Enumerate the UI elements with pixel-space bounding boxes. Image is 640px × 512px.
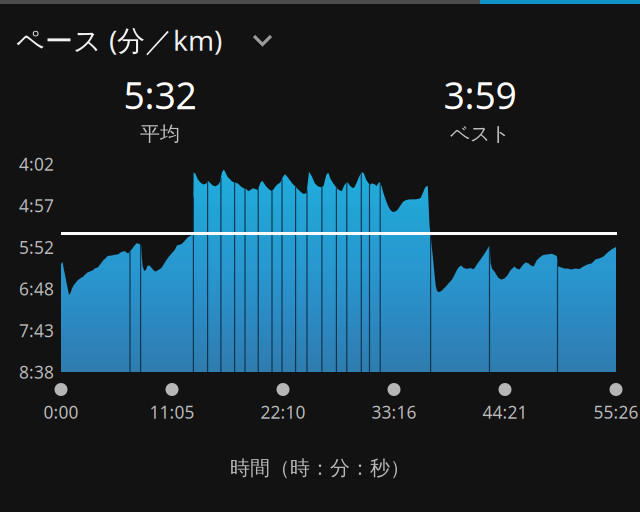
staticText: 4:02	[19, 152, 54, 175]
staticText: 平均	[140, 122, 180, 146]
staticText: 33:16	[371, 400, 416, 423]
staticText: ベスト	[450, 122, 510, 146]
staticText: 55:26	[593, 400, 638, 423]
button[interactable]: ペース (分／km)	[0, 20, 640, 60]
staticText: 5:52	[19, 236, 54, 259]
staticText: 44:21	[482, 400, 527, 423]
staticText: 4:57	[19, 194, 54, 217]
staticText: 8:38	[19, 360, 54, 383]
staticText: 3:59	[443, 70, 516, 120]
staticText: 7:43	[19, 319, 54, 342]
staticText: ペース (分／km)	[16, 21, 222, 59]
staticText: 時間（時：分：秒）	[230, 456, 410, 480]
staticText: 5:32	[123, 70, 196, 120]
staticText: 0:00	[43, 400, 78, 423]
staticText: 6:48	[19, 277, 54, 300]
staticText: 11:05	[149, 400, 194, 423]
staticText: 22:10	[260, 400, 305, 423]
